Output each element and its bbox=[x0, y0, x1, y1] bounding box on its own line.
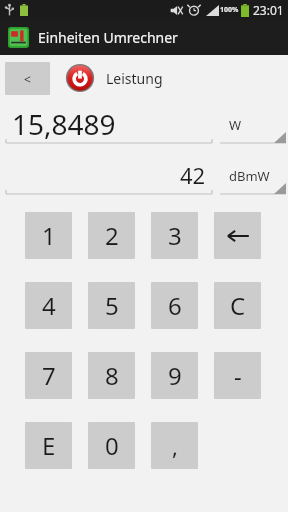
staticText: < bbox=[24, 71, 31, 87]
staticText: E bbox=[42, 429, 56, 462]
button[interactable]: - bbox=[214, 352, 261, 399]
staticText: 8 bbox=[105, 359, 119, 392]
staticText: 9 bbox=[168, 359, 182, 392]
staticText: dBmW bbox=[229, 167, 270, 185]
staticText: , bbox=[172, 431, 178, 461]
button[interactable]: W bbox=[220, 109, 286, 145]
staticText: 15,8489 bbox=[12, 105, 116, 139]
staticText: Einheiten Umrechner bbox=[38, 28, 178, 47]
staticText: 4 bbox=[42, 289, 56, 322]
staticText: 0 bbox=[105, 429, 119, 462]
staticText: C bbox=[230, 289, 246, 322]
staticText: 6 bbox=[168, 289, 182, 322]
button[interactable]: 15,8489 bbox=[4, 105, 214, 145]
button[interactable]: 9 bbox=[151, 352, 198, 399]
staticText: W bbox=[229, 116, 242, 134]
button[interactable]: 3 bbox=[151, 212, 198, 259]
button[interactable]: 42 bbox=[4, 156, 214, 196]
staticText: 100% bbox=[220, 5, 239, 15]
staticText: 5 bbox=[105, 289, 119, 322]
button[interactable]: 8 bbox=[88, 352, 135, 399]
staticText: - bbox=[234, 359, 242, 392]
button[interactable]: 0 bbox=[88, 422, 135, 469]
button[interactable]: dBmW bbox=[220, 160, 286, 196]
staticText: 3 bbox=[168, 219, 182, 252]
button[interactable]: Back bbox=[5, 62, 50, 95]
button[interactable]: E bbox=[25, 422, 72, 469]
staticText: 1 bbox=[42, 219, 56, 252]
button[interactable]: 5 bbox=[88, 282, 135, 329]
button[interactable]: 7 bbox=[25, 352, 72, 399]
staticText: 42 bbox=[180, 160, 206, 190]
button[interactable]: , bbox=[151, 422, 198, 469]
button[interactable]: Backspace bbox=[214, 212, 261, 259]
staticText: 7 bbox=[42, 359, 56, 392]
button[interactable]: 1 bbox=[25, 212, 72, 259]
staticText: Leistung bbox=[106, 69, 163, 88]
staticText: 2 bbox=[105, 219, 119, 252]
button[interactable]: 2 bbox=[88, 212, 135, 259]
staticText: 23:01 bbox=[253, 2, 284, 18]
button[interactable]: 6 bbox=[151, 282, 198, 329]
button[interactable]: 4 bbox=[25, 282, 72, 329]
button[interactable]: C bbox=[214, 282, 261, 329]
button[interactable]: Power category bbox=[64, 62, 96, 94]
